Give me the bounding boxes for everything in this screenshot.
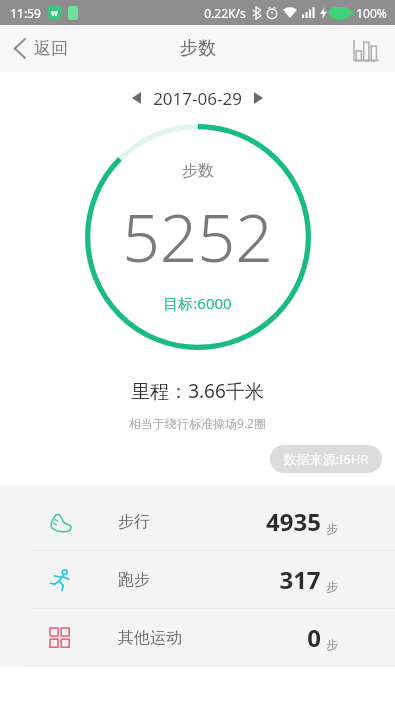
button[interactable]: Next day xyxy=(246,84,271,112)
staticText: 5252 xyxy=(122,191,273,281)
staticText: 步 xyxy=(326,521,338,536)
staticText: 步 xyxy=(326,637,338,652)
staticText: 步数 xyxy=(182,161,214,181)
staticText: 跑步 xyxy=(118,570,150,590)
staticText: 步数 xyxy=(180,37,216,60)
button[interactable]: Statistics chart xyxy=(337,27,395,71)
other: Other exercise xyxy=(48,626,72,650)
button[interactable]: Running xyxy=(0,551,395,608)
staticText: 步 xyxy=(326,579,338,594)
staticText: 数据来源:I6HR xyxy=(283,450,369,468)
button[interactable]: Other exercise xyxy=(0,609,395,666)
button[interactable]: Walking xyxy=(0,493,395,550)
staticText: 0 xyxy=(307,621,321,654)
staticText: 317 xyxy=(279,563,321,596)
staticText: 里程：3.66千米 xyxy=(131,378,264,404)
staticText: 100% xyxy=(356,5,387,21)
other: Running xyxy=(48,568,72,592)
staticText: 相当于绕行标准操场9.2圈 xyxy=(129,415,266,431)
staticText: 其他运动 xyxy=(118,628,182,648)
button[interactable]: 数据来源:I6HR xyxy=(270,445,382,473)
other: Walking xyxy=(48,510,72,534)
staticText: 步行 xyxy=(118,512,150,532)
staticText: w xyxy=(51,7,58,18)
staticText: 4935 xyxy=(266,505,321,538)
staticText: 返回 xyxy=(34,38,68,59)
staticText: 2017-06-29 xyxy=(153,87,242,110)
button[interactable]: Previous day xyxy=(124,84,149,112)
staticText: 11:59 xyxy=(10,5,41,21)
staticText: 目标:6000 xyxy=(163,293,232,313)
staticText: 0.22K/s xyxy=(204,5,246,21)
button[interactable]: 返回 xyxy=(0,30,82,67)
